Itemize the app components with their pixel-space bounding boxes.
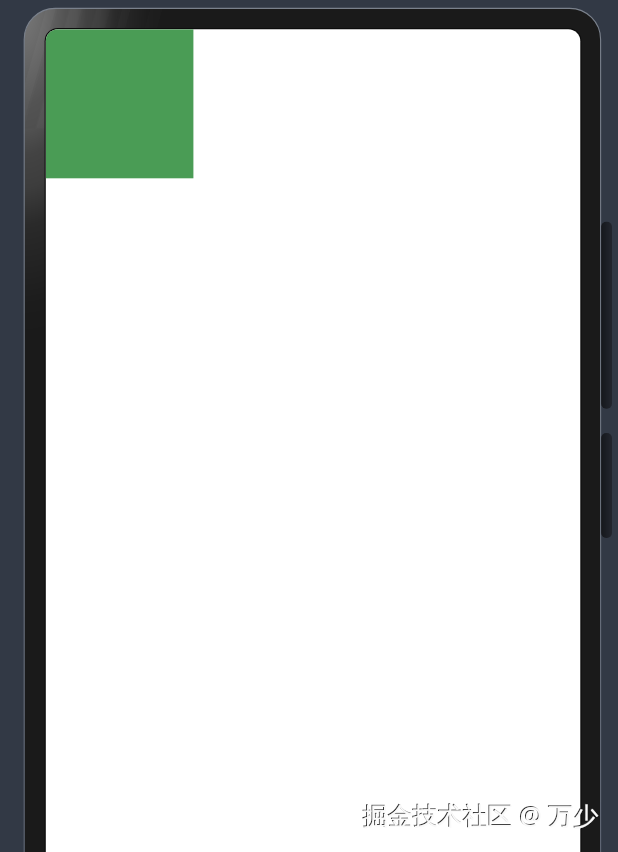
button[interactable]: Green surface (46, 29, 193, 178)
staticText: 掘金技术社区 @ 万少 (362, 797, 598, 831)
staticText: 掘金技术社区 @ 万少 (363, 798, 599, 832)
